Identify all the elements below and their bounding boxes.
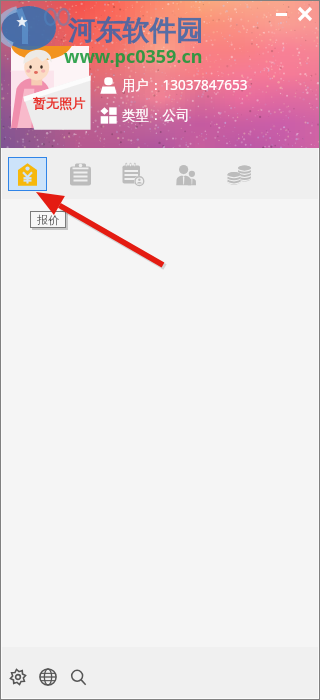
button[interactable]: Quote xyxy=(8,157,47,191)
button[interactable]: Settings xyxy=(4,663,32,691)
button[interactable]: Minimize xyxy=(270,3,292,25)
button[interactable]: Language xyxy=(34,663,62,691)
button[interactable]: Search xyxy=(64,663,92,691)
button[interactable]: Avatar xyxy=(11,46,89,128)
staticText: www.pc0359.cn xyxy=(64,44,203,69)
button[interactable]: Customers xyxy=(167,157,206,191)
button[interactable]: Orders xyxy=(61,157,100,191)
staticText: 暂无照片 xyxy=(33,95,85,111)
staticText: 类型：公司 xyxy=(122,107,190,124)
staticText: 河东软件园 xyxy=(68,14,203,48)
button[interactable]: Close xyxy=(294,3,316,25)
staticText: 用户：13037847653 xyxy=(122,76,248,94)
button[interactable]: Records xyxy=(114,157,153,191)
button[interactable]: Finance xyxy=(220,157,259,191)
staticText: 报价 xyxy=(37,213,59,227)
